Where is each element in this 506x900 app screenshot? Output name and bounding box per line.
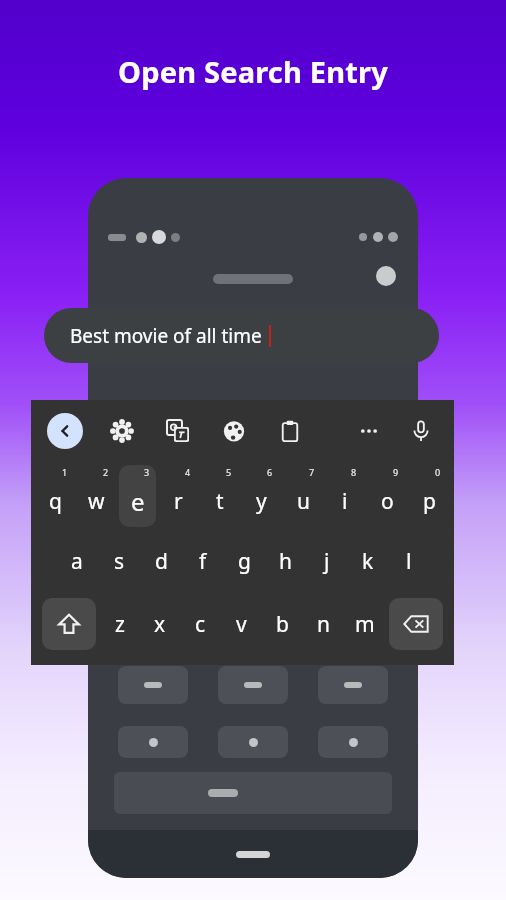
button[interactable]: f (182, 530, 224, 592)
staticText: p (423, 487, 436, 516)
button[interactable]: Settings (105, 414, 139, 448)
staticText: 5 (226, 466, 232, 478)
staticText: i (342, 487, 348, 516)
button[interactable]: 4 (160, 465, 197, 527)
button[interactable]: 0 (410, 465, 448, 527)
staticText: c (195, 610, 206, 639)
staticText: 6 (267, 466, 273, 478)
button[interactable]: Translate (161, 414, 195, 448)
button[interactable]: 8 (326, 465, 364, 527)
staticText: Best movie of all time (70, 323, 262, 349)
staticText: w (88, 487, 105, 516)
button[interactable]: More options (352, 414, 386, 448)
staticText: l (406, 547, 412, 576)
staticText: y (256, 487, 267, 516)
button[interactable]: x (140, 592, 180, 656)
button[interactable]: v (221, 592, 262, 656)
staticText: b (276, 610, 289, 639)
button[interactable]: g (224, 530, 265, 592)
button[interactable]: a (56, 530, 98, 592)
button[interactable]: l (388, 530, 429, 592)
staticText: 8 (351, 466, 357, 478)
staticText: d (155, 547, 168, 576)
staticText: 7 (309, 466, 315, 478)
staticText: q (49, 487, 62, 516)
button[interactable]: 9 (368, 465, 406, 527)
staticText: a (71, 547, 83, 576)
staticText: 1 (62, 466, 68, 478)
staticText: f (199, 547, 207, 576)
staticText: 2 (103, 466, 109, 478)
button[interactable]: Voice input (404, 414, 438, 448)
button[interactable]: Backspace (389, 598, 443, 650)
staticText: e (131, 485, 145, 518)
button[interactable]: d (140, 530, 182, 592)
staticText: k (362, 547, 374, 576)
button[interactable]: Themes (217, 414, 251, 448)
button[interactable]: c (180, 592, 221, 656)
button[interactable]: h (265, 530, 306, 592)
button[interactable]: m (344, 592, 385, 656)
button[interactable]: Back (47, 413, 83, 449)
button[interactable]: k (347, 530, 388, 592)
staticText: r (174, 487, 183, 516)
staticText: Open Search Entry (118, 52, 388, 91)
button[interactable]: Shift (42, 598, 96, 650)
staticText: n (317, 610, 330, 639)
staticText: z (115, 610, 125, 639)
button[interactable]: 2 (78, 465, 115, 527)
button[interactable]: 6 (242, 465, 280, 527)
button[interactable]: z (100, 592, 140, 656)
staticText: t (216, 487, 224, 516)
staticText: v (236, 610, 247, 639)
staticText: u (297, 487, 310, 516)
button[interactable]: 5 (201, 465, 238, 527)
staticText: x (154, 610, 166, 639)
button[interactable]: Best movie of all time (44, 308, 439, 363)
staticText: o (381, 487, 394, 516)
button[interactable]: j (306, 530, 347, 592)
button[interactable]: s (98, 530, 140, 592)
staticText: s (114, 547, 125, 576)
button[interactable]: 7 (284, 465, 322, 527)
staticText: h (279, 547, 292, 576)
button[interactable]: b (262, 592, 303, 656)
button[interactable]: 3 (119, 465, 156, 527)
staticText: m (355, 610, 375, 639)
button[interactable]: Clipboard (273, 414, 307, 448)
staticText: 9 (393, 466, 399, 478)
staticText: 3 (144, 466, 150, 478)
button[interactable]: n (303, 592, 344, 656)
staticText: 4 (185, 466, 191, 478)
button[interactable]: 1 (37, 465, 74, 527)
staticText: g (238, 547, 251, 576)
staticText: j (324, 547, 330, 576)
staticText: 0 (435, 466, 441, 478)
